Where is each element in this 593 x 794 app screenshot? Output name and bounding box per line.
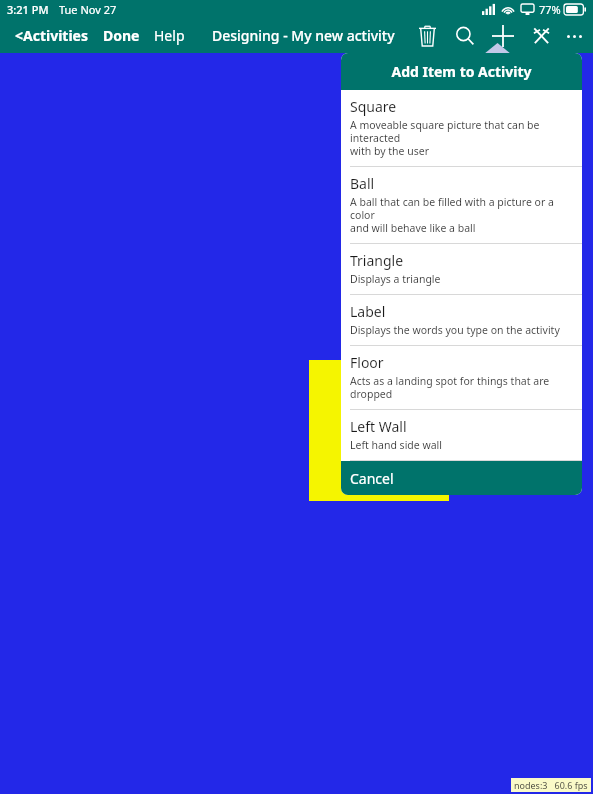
button[interactable]: More options xyxy=(559,21,589,51)
staticText: Designing - My new activity xyxy=(212,26,395,45)
button[interactable]: Square xyxy=(341,90,582,166)
button[interactable]: <Activities xyxy=(13,22,91,49)
button[interactable] xyxy=(309,360,449,501)
staticText: Ball xyxy=(350,174,375,193)
staticText: nodes:3 60.6 fps xyxy=(514,779,588,791)
button[interactable]: Done xyxy=(101,22,142,49)
staticText: Floor xyxy=(350,353,384,372)
button[interactable]: Label xyxy=(341,294,582,345)
staticText: 77% xyxy=(539,2,561,17)
staticText: A ball that can be filled with a picture… xyxy=(350,195,573,235)
staticText: <Activities xyxy=(15,26,89,45)
staticText: Triangle xyxy=(350,251,404,270)
staticText: Left hand side wall xyxy=(350,438,443,452)
staticText: A moveable square picture that can be in… xyxy=(350,118,573,158)
staticText: Displays a triangle xyxy=(350,272,441,286)
button[interactable]: Left Wall xyxy=(341,409,582,460)
staticText: Cancel xyxy=(350,469,394,488)
button[interactable]: Cancel xyxy=(341,461,582,495)
button[interactable]: Tools xyxy=(523,18,559,53)
button[interactable]: Ball xyxy=(341,166,582,243)
staticText: Left Wall xyxy=(350,417,407,436)
staticText: Square xyxy=(350,97,397,116)
button[interactable]: Floor xyxy=(341,345,582,409)
button[interactable]: Add item xyxy=(485,18,521,53)
staticText: Label xyxy=(350,302,386,321)
staticText: Displays the words you type on the activ… xyxy=(350,323,560,337)
staticText: Tue Nov 27 xyxy=(59,2,117,17)
staticText: Done xyxy=(103,26,140,45)
button[interactable]: Help xyxy=(152,22,187,49)
staticText: Acts as a landing spot for things that a… xyxy=(350,374,573,401)
button[interactable]: Triangle xyxy=(341,243,582,294)
staticText: Add Item to Activity xyxy=(391,62,532,81)
button[interactable]: Delete xyxy=(409,18,445,53)
button[interactable]: Search xyxy=(447,18,483,53)
staticText: 3:21 PM xyxy=(7,2,49,17)
staticText: Help xyxy=(154,26,185,45)
